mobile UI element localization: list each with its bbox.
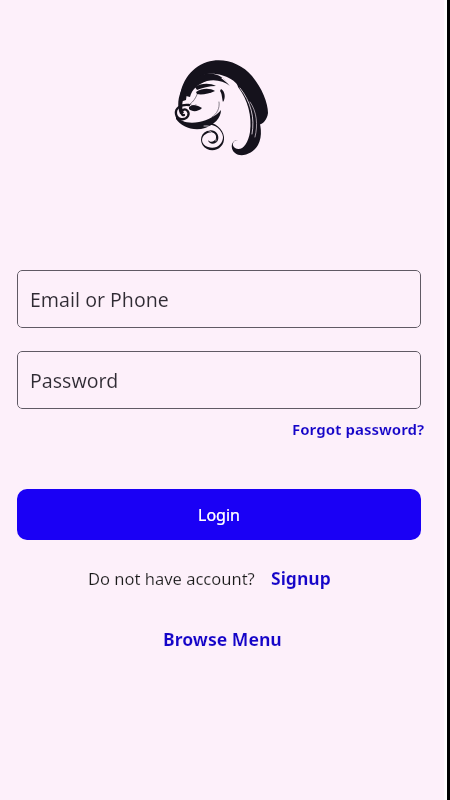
staticText: Email or Phone: [30, 286, 169, 313]
staticText: Do not have account?: [88, 567, 255, 589]
button[interactable]: Email or Phone: [17, 270, 421, 328]
staticText: Signup: [271, 566, 331, 590]
button[interactable]: Login: [17, 489, 421, 540]
button[interactable]: Signup: [271, 562, 331, 594]
button[interactable]: Forgot password?: [282, 415, 444, 443]
button[interactable]: Password: [17, 351, 421, 409]
staticText: Password: [30, 367, 119, 394]
staticText: Login: [198, 504, 240, 526]
button[interactable]: Browse Menu: [151, 622, 294, 656]
staticText: Browse Menu: [163, 627, 282, 651]
staticText: Forgot password?: [292, 419, 425, 439]
